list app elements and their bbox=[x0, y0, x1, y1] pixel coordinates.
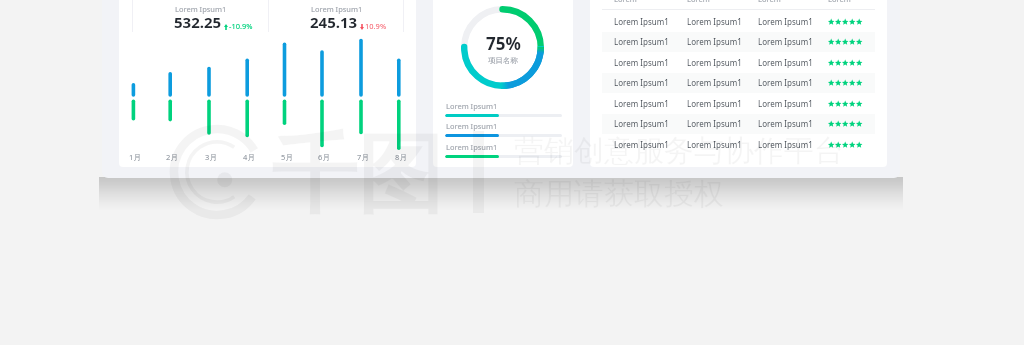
button[interactable]: Lorem Ipsum1 bbox=[602, 12, 875, 32]
staticText: 8月 bbox=[395, 152, 407, 162]
button[interactable]: Lorem Ipsum1 bbox=[171, 0, 259, 32]
staticText: Lorem Ipsum1 bbox=[446, 121, 498, 131]
staticText: Lorem Ipsum1 bbox=[614, 16, 687, 27]
staticText: Lorem Ipsum1 bbox=[758, 139, 828, 150]
staticText: Lorem Ipsum1 bbox=[687, 139, 758, 150]
staticText: Lorem Ipsum1 bbox=[446, 142, 498, 152]
staticText: Lorem Ipsum1 bbox=[446, 101, 498, 111]
staticText: Lorem Ipsum1 bbox=[614, 118, 687, 129]
other: Completion 75 percent bbox=[461, 6, 544, 89]
staticText: Lorem Ipsum1 bbox=[687, 98, 758, 109]
staticText: 2月 bbox=[166, 152, 178, 162]
staticText: 商用请获取授权 bbox=[514, 175, 724, 213]
staticText: 10.9% bbox=[365, 21, 387, 31]
staticText: 营销创意服务与协作平台 bbox=[514, 132, 844, 170]
staticText: Lorem Ipsum1 bbox=[758, 98, 828, 109]
button[interactable]: Lorem Ipsum1 bbox=[602, 114, 875, 134]
staticText: Lorem Ipsum1 bbox=[614, 98, 687, 109]
staticText: Lorem bbox=[828, 0, 851, 4]
staticText: 7月 bbox=[357, 152, 369, 162]
staticText: Lorem Ipsum1 bbox=[687, 77, 758, 88]
staticText: Lorem Ipsum1 bbox=[614, 139, 687, 150]
staticText: Lorem Ipsum1 bbox=[614, 36, 687, 47]
staticText: 6月 bbox=[318, 152, 330, 162]
staticText: Lorem Ipsum1 bbox=[758, 77, 828, 88]
staticText: Lorem bbox=[614, 0, 637, 4]
button[interactable]: Lorem Ipsum1 bbox=[602, 73, 875, 93]
button[interactable]: Lorem Ipsum1 bbox=[307, 0, 395, 32]
staticText: Lorem Ipsum1 bbox=[687, 16, 758, 27]
button[interactable]: Lorem Ipsum1 bbox=[445, 121, 562, 141]
staticText: Lorem Ipsum1 bbox=[758, 16, 828, 27]
staticText: Lorem Ipsum1 bbox=[175, 4, 227, 14]
button[interactable]: Lorem Ipsum1 bbox=[445, 142, 562, 162]
button[interactable]: Lorem Ipsum1 bbox=[602, 53, 875, 73]
staticText: -10.9% bbox=[229, 21, 253, 31]
staticText: 4月 bbox=[243, 152, 255, 162]
staticText: 项目名称 bbox=[488, 56, 518, 65]
staticText: Lorem Ipsum1 bbox=[687, 36, 758, 47]
button[interactable]: Lorem Ipsum1 bbox=[602, 32, 875, 52]
button[interactable]: Lorem Ipsum1 bbox=[445, 101, 562, 120]
button[interactable]: Lorem Ipsum1 bbox=[602, 135, 875, 155]
staticText: Lorem Ipsum1 bbox=[758, 118, 828, 129]
staticText: Lorem Ipsum1 bbox=[758, 36, 828, 47]
staticText: Lorem Ipsum1 bbox=[614, 57, 687, 68]
staticText: 3月 bbox=[205, 152, 217, 162]
staticText: 245.13 bbox=[310, 12, 358, 32]
staticText: Lorem Ipsum1 bbox=[687, 118, 758, 129]
staticText: Lorem Ipsum1 bbox=[758, 57, 828, 68]
staticText: 1月 bbox=[129, 152, 141, 162]
staticText: Lorem bbox=[758, 0, 781, 4]
staticText: Lorem Ipsum1 bbox=[614, 77, 687, 88]
button[interactable]: Lorem Ipsum1 bbox=[602, 94, 875, 114]
staticText: Lorem Ipsum1 bbox=[687, 57, 758, 68]
staticText: 532.25 bbox=[174, 12, 222, 32]
staticText: 5月 bbox=[281, 152, 293, 162]
staticText: 千图 bbox=[271, 121, 443, 229]
staticText: 75% bbox=[486, 32, 521, 55]
staticText: Lorem bbox=[687, 0, 710, 4]
staticText: Lorem Ipsum1 bbox=[311, 4, 363, 14]
